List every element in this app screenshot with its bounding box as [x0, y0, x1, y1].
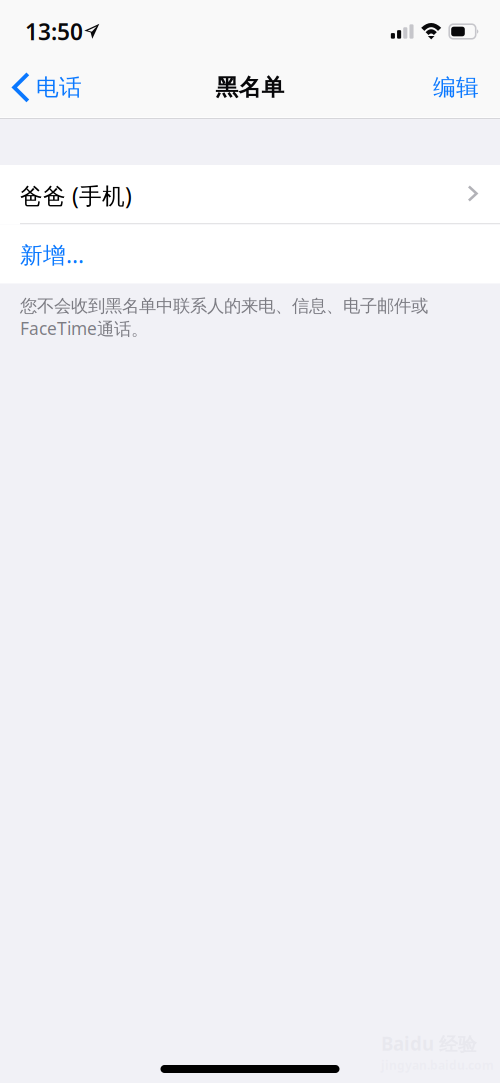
button[interactable]: 电话	[0, 62, 92, 112]
button[interactable]: 爸爸 (手机)	[0, 165, 500, 223]
staticText: 新增...	[20, 239, 84, 269]
staticText: 13:50	[25, 16, 83, 46]
staticText: 黑名单	[215, 74, 284, 101]
button[interactable]: 新增...	[0, 224, 500, 283]
staticText: 您不会收到黑名单中联系人的来电、信息、电子邮件或 FaceTime通话。	[20, 295, 428, 340]
staticText: 爸爸 (手机)	[20, 180, 132, 210]
staticText: 编辑	[433, 74, 479, 101]
button[interactable]: 编辑	[419, 62, 500, 112]
staticText: 电话	[36, 74, 82, 101]
staticText: Baidu 经验	[381, 1031, 477, 1056]
